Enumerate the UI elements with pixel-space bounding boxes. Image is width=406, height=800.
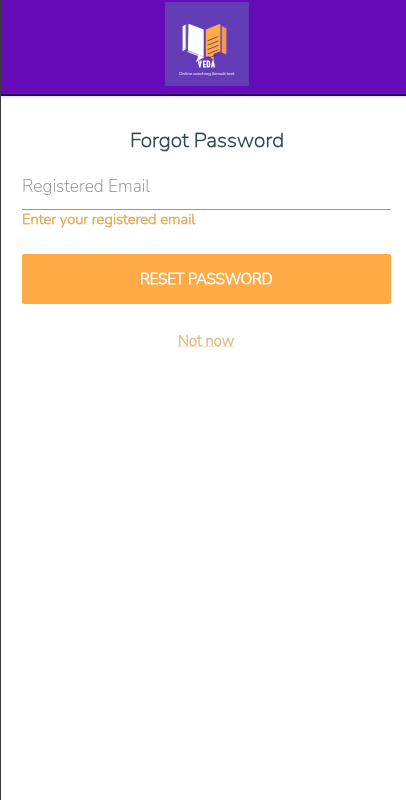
staticText: Forgot Password xyxy=(8,126,406,155)
staticText: Registered Email xyxy=(22,174,151,198)
button[interactable]: Not now xyxy=(170,328,243,354)
button[interactable]: RESET PASSWORD xyxy=(22,254,391,304)
staticText: Online coaching &mock test xyxy=(179,70,235,76)
staticText: RESET PASSWORD xyxy=(140,269,273,289)
staticText: VEDA xyxy=(198,58,216,69)
staticText: Enter your registered email xyxy=(22,209,196,229)
